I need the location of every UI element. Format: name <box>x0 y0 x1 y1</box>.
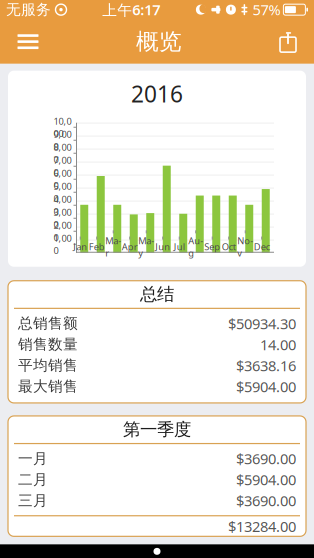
staticText: $3638.16 <box>236 356 296 375</box>
staticText: 第一季度 <box>123 419 191 440</box>
staticText: 5,000 <box>53 180 71 205</box>
staticText: 三月 <box>18 492 48 510</box>
staticText: Feb <box>89 241 105 253</box>
staticText: $5904.00 <box>236 377 296 396</box>
staticText: 二月 <box>18 471 48 489</box>
staticText: 10,000 <box>53 115 71 140</box>
staticText: 1,000 <box>53 232 71 257</box>
staticText: Nov <box>237 234 253 259</box>
staticText: Jul <box>174 241 185 253</box>
staticText: 最大销售 <box>18 377 78 395</box>
staticText: 2016 <box>131 79 183 109</box>
staticText: 概览 <box>136 28 182 55</box>
staticText: 6,000 <box>53 167 71 192</box>
staticText: Dec <box>254 241 270 253</box>
staticText: $5904.00 <box>236 470 296 489</box>
staticText: 总结 <box>140 284 174 305</box>
staticText: $50934.30 <box>228 314 296 333</box>
staticText: 14.00 <box>260 335 296 354</box>
staticText: Jun <box>155 241 170 253</box>
staticText: 一月 <box>18 450 48 468</box>
button[interactable]: Menu <box>6 24 50 60</box>
staticText: 平均销售 <box>18 356 78 374</box>
staticText: 57% <box>252 0 280 19</box>
staticText: 总销售额 <box>18 314 78 332</box>
staticText: 无服务 <box>6 1 51 19</box>
staticText: Oct <box>222 241 236 253</box>
staticText: 2,000 <box>53 219 71 244</box>
staticText: 4,000 <box>53 193 71 218</box>
staticText: 9,000 <box>53 128 71 153</box>
staticText: May <box>138 234 154 259</box>
staticText: $3690.00 <box>236 449 296 468</box>
staticText: Mar <box>105 234 121 259</box>
staticText: 7,000 <box>53 154 71 179</box>
staticText: $3690.00 <box>236 491 296 510</box>
staticText: $13284.00 <box>228 517 296 536</box>
staticText: 上午6:17 <box>102 0 160 19</box>
staticText: 3,000 <box>53 206 71 231</box>
staticText: Sep <box>204 241 220 253</box>
staticText: Jan <box>73 241 87 253</box>
staticText: Aug <box>188 234 203 259</box>
staticText: 销售数量 <box>18 335 78 353</box>
staticText: 8,000 <box>53 141 71 166</box>
staticText: Apr <box>122 241 138 253</box>
button[interactable]: Share <box>268 25 308 59</box>
